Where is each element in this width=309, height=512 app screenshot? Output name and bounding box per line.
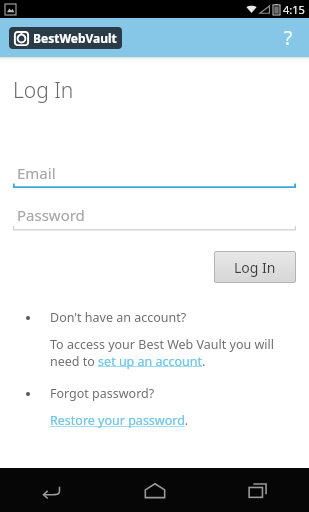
staticText: BestWebVault — [33, 30, 117, 46]
staticText: Email — [17, 163, 56, 183]
button[interactable]: Restore your password. — [50, 412, 189, 429]
staticText: ? — [284, 25, 293, 51]
staticText: Log In — [234, 258, 276, 277]
staticText: Don't have an account? — [50, 309, 187, 326]
staticText: Log In — [13, 76, 74, 105]
button[interactable]: Help — [273, 23, 303, 53]
button[interactable]: Log In — [214, 251, 296, 283]
staticText: Forgot password? — [50, 385, 155, 402]
button[interactable]: BestWebVault — [9, 27, 122, 49]
button[interactable]: Home — [103, 468, 206, 512]
button[interactable]: To access your Best Web Vault you will n… — [50, 336, 293, 369]
button[interactable]: Recent apps — [206, 468, 309, 512]
staticText: Password — [17, 205, 85, 225]
button[interactable]: Password — [13, 204, 296, 231]
button[interactable]: Email — [13, 162, 296, 189]
staticText: 4:15 — [283, 2, 305, 17]
button[interactable]: Back — [0, 468, 103, 512]
